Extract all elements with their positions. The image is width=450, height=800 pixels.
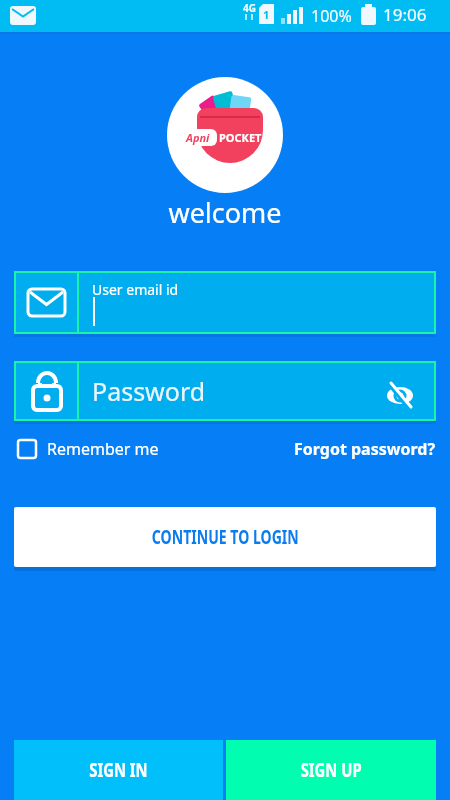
staticText: User email id bbox=[92, 280, 179, 299]
button[interactable]: SIGN UP bbox=[226, 740, 436, 800]
button[interactable]: Password bbox=[16, 363, 434, 419]
staticText: Password bbox=[92, 374, 206, 408]
button[interactable]: SIGN IN bbox=[14, 740, 223, 800]
staticText: SIGN IN bbox=[89, 757, 148, 783]
staticText: Remember me bbox=[47, 438, 159, 460]
staticText: 100% bbox=[311, 5, 352, 27]
button[interactable]: CONTINUE TO LOGIN bbox=[14, 507, 436, 567]
staticText: 19:06 bbox=[383, 3, 427, 26]
button[interactable]: User email id bbox=[16, 273, 434, 332]
staticText: 1 bbox=[263, 7, 270, 22]
staticText: Apni bbox=[186, 130, 210, 145]
staticText: CONTINUE TO LOGIN bbox=[152, 524, 299, 550]
button[interactable]: Forgot password? bbox=[294, 438, 436, 460]
staticText: welcome bbox=[0, 194, 450, 231]
button[interactable] bbox=[17, 439, 37, 459]
staticText: POCKET bbox=[219, 130, 262, 145]
staticText: 4G bbox=[243, 1, 256, 15]
staticText: SIGN UP bbox=[301, 757, 362, 783]
